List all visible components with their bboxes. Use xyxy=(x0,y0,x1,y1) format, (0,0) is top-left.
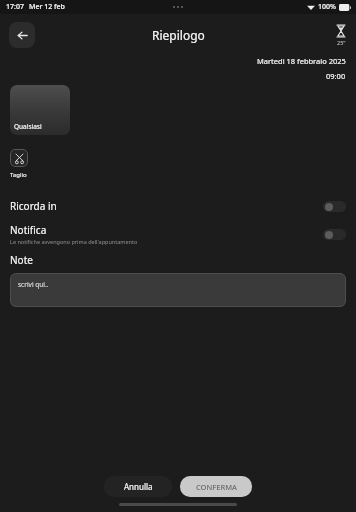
button[interactable]: Ricorda in xyxy=(0,193,356,219)
button[interactable]: Annulla xyxy=(104,476,172,497)
button[interactable]: CONFERMA xyxy=(180,476,252,497)
staticText: 17:07 xyxy=(6,2,24,12)
staticText: Annulla xyxy=(124,481,153,492)
staticText: Martedì 18 febbraio 2025 xyxy=(257,56,346,66)
staticText: Le notifiche avvengono prima dell'appunt… xyxy=(10,238,138,245)
staticText: Notifica xyxy=(10,223,47,237)
staticText: Qualsiasi xyxy=(14,122,42,131)
staticText: Taglio xyxy=(10,171,27,179)
staticText: scrivi qui.. xyxy=(18,280,49,289)
staticText: 09:00 xyxy=(326,71,346,81)
staticText: Note xyxy=(10,253,33,267)
staticText: 100% xyxy=(318,2,336,12)
button[interactable]: Indietro xyxy=(9,22,35,48)
button[interactable]: Notifica xyxy=(0,219,356,249)
button[interactable]: Qualsiasi xyxy=(10,85,70,135)
staticText: Ricorda in xyxy=(10,199,57,213)
button[interactable]: Taglio xyxy=(10,149,28,179)
staticText: 25" xyxy=(337,39,346,46)
button[interactable]: Durata 25 minuti xyxy=(335,24,347,46)
button[interactable]: scrivi qui.. xyxy=(10,273,346,307)
staticText: Riepilogo xyxy=(152,27,205,43)
staticText: CONFERMA xyxy=(196,482,237,492)
staticText: Mer 12 feb xyxy=(29,2,65,12)
